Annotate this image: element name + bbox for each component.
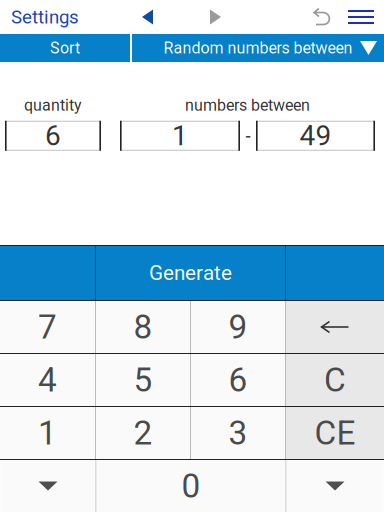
staticText: 5: [133, 360, 152, 400]
staticText: 8: [133, 307, 152, 347]
staticText: 6: [45, 119, 61, 152]
staticText: CE: [314, 413, 355, 453]
staticText: 9: [228, 307, 247, 347]
staticText: Settings: [11, 6, 79, 28]
staticText: -: [245, 125, 250, 147]
button[interactable]: Scroll down left: [0, 460, 95, 512]
staticText: 1: [38, 413, 57, 453]
button[interactable]: Sort: [0, 34, 130, 62]
button[interactable]: CE: [286, 407, 384, 459]
button[interactable]: 9: [191, 301, 285, 353]
button[interactable]: Generate: [96, 246, 285, 300]
button[interactable]: Undo: [310, 1, 341, 32]
button[interactable]: 2: [96, 407, 190, 459]
button[interactable]: C: [286, 354, 384, 406]
staticText: quantity: [24, 96, 82, 115]
button[interactable]: 3: [191, 407, 285, 459]
staticText: 3: [228, 413, 247, 453]
button[interactable]: 7: [0, 301, 95, 353]
button[interactable]: 5: [96, 354, 190, 406]
staticText: Sort: [50, 39, 80, 57]
button[interactable]: Random numbers between: [132, 34, 384, 62]
button[interactable]: Next: [202, 1, 229, 32]
button[interactable]: 0: [96, 460, 285, 512]
staticText: numbers between: [185, 96, 310, 115]
button[interactable]: 4: [0, 354, 95, 406]
button[interactable]: Menu: [342, 4, 380, 30]
button[interactable]: Backspace: [286, 301, 384, 353]
staticText: 6: [228, 360, 247, 400]
staticText: 0: [181, 466, 200, 506]
button[interactable]: 1: [0, 407, 95, 459]
staticText: C: [324, 360, 346, 400]
button[interactable]: Scroll down right: [286, 460, 383, 512]
staticText: 49: [299, 119, 331, 152]
button[interactable]: Settings: [0, 0, 87, 34]
button[interactable]: Previous: [134, 1, 161, 32]
staticText: 2: [133, 413, 152, 453]
button[interactable]: 8: [96, 301, 190, 353]
staticText: Random numbers between: [163, 39, 352, 57]
staticText: 4: [38, 360, 57, 400]
staticText: 1: [172, 119, 188, 152]
button[interactable]: 6: [191, 354, 285, 406]
staticText: Generate: [149, 261, 232, 285]
staticText: 7: [38, 307, 57, 347]
